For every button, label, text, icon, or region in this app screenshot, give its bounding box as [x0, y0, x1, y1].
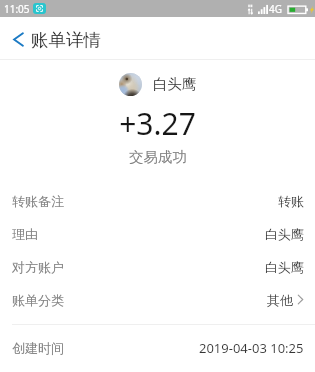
- staticText: 账单分类: [12, 292, 64, 308]
- staticText: 2019-04-03 10:25: [199, 339, 304, 357]
- staticText: +3.27: [119, 103, 196, 139]
- button[interactable]: 理由: [0, 217, 315, 250]
- button[interactable]: 对方账户: [0, 250, 315, 283]
- staticText: 4G: [269, 2, 282, 16]
- staticText: 理由: [12, 226, 38, 242]
- staticText: 交易成功: [129, 148, 187, 164]
- button[interactable]: 创建时间: [0, 331, 315, 364]
- button[interactable]: 账单分类: [0, 283, 315, 316]
- staticText: 对方账户: [12, 259, 64, 275]
- button[interactable]: Back: [2, 20, 31, 59]
- staticText: 11:05: [4, 2, 30, 16]
- staticText: 白头鹰: [265, 226, 304, 242]
- staticText: 账单详情: [31, 29, 101, 51]
- staticText: 白头鹰: [153, 75, 197, 93]
- staticText: 其他: [267, 292, 293, 308]
- staticText: 转账: [278, 193, 304, 209]
- staticText: 创建时间: [12, 340, 64, 356]
- staticText: 转账备注: [12, 193, 64, 209]
- button[interactable]: 转账备注: [0, 184, 315, 217]
- staticText: 白头鹰: [265, 259, 304, 275]
